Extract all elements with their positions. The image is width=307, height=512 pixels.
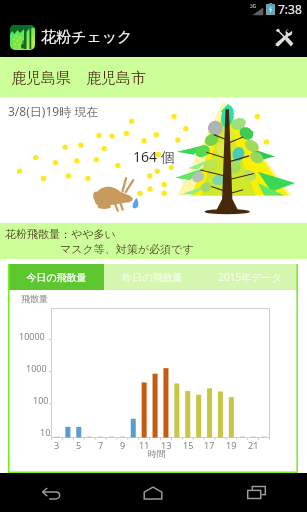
staticText: 10 [40, 426, 51, 438]
button[interactable]: 今日の飛散量 [8, 264, 104, 290]
staticText: 7:38 [278, 1, 302, 17]
staticText: 飛散量 [21, 293, 48, 304]
button[interactable]: 鹿児島県 鹿児島市 [0, 57, 307, 97]
button[interactable]: 昨日の飛散量 [104, 264, 201, 290]
staticText: 13 [161, 439, 172, 451]
staticText: 164 個 [133, 147, 175, 166]
staticText: 9 [120, 439, 126, 451]
staticText: 花粉飛散量：やや多い [5, 227, 116, 241]
staticText: 11 [139, 439, 150, 451]
button[interactable]: Recent apps [224, 473, 288, 512]
staticText: 3/8(日)19時 現在 [8, 103, 99, 119]
staticText: 21 [248, 439, 259, 451]
staticText: 今日の飛散量 [26, 271, 87, 284]
button[interactable]: 2015年データ [201, 264, 298, 290]
button[interactable]: Back [19, 473, 83, 512]
button[interactable]: Settings [261, 18, 307, 57]
staticText: 15 [183, 439, 194, 451]
staticText: 時間 [148, 448, 166, 459]
staticText: 2015年データ [218, 270, 282, 284]
staticText: 5 [76, 439, 82, 451]
staticText: 17 [204, 439, 215, 451]
staticText: 10000 [19, 330, 45, 342]
staticText: マスク等、対策が必須です [60, 242, 194, 256]
staticText: 7 [98, 439, 104, 451]
staticText: 3 [54, 439, 60, 451]
staticText: 1000 [26, 362, 47, 374]
staticText: 花粉チェック [41, 28, 133, 47]
staticText: 19 [226, 439, 237, 451]
button[interactable]: Home [121, 473, 185, 512]
staticText: 100 [33, 394, 49, 406]
staticText: 昨日の飛散量 [122, 271, 183, 284]
staticText: 鹿児島県 鹿児島市 [11, 67, 146, 87]
button[interactable]: 花粉チェック [10, 18, 133, 57]
